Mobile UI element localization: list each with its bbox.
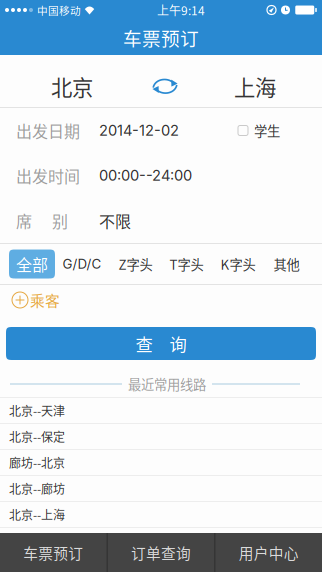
button[interactable]: 学生	[238, 114, 322, 146]
staticText: 席	[16, 209, 32, 232]
staticText: K字头	[220, 254, 255, 274]
staticText: 车票预订	[123, 24, 199, 51]
staticText: 北京--保定	[9, 428, 65, 445]
staticText: 其他	[273, 254, 299, 274]
staticText: G/D/C	[62, 256, 101, 272]
staticText: 出发时间	[16, 164, 80, 187]
button[interactable]: 北京--天津	[0, 398, 322, 424]
button[interactable]: 乘客	[0, 285, 70, 315]
staticText: 乘客	[30, 289, 60, 311]
button[interactable]: 北京	[0, 64, 144, 108]
staticText: 查 询	[135, 331, 186, 356]
staticText: 北京--廊坊	[9, 480, 65, 497]
button[interactable]: G/D/C	[55, 244, 109, 284]
staticText: 最近常用线路	[128, 374, 206, 394]
button[interactable]: 北京--上海	[0, 502, 322, 528]
staticText: Z字头	[118, 254, 152, 274]
button[interactable]: 席	[0, 198, 322, 243]
staticText: 中国移动	[37, 2, 81, 18]
staticText: 北京	[51, 71, 93, 102]
button[interactable]: 车票预订	[0, 533, 107, 572]
staticText: 订单查询	[131, 542, 191, 563]
staticText: 学生	[254, 121, 280, 140]
button[interactable]: 用户中心	[215, 533, 322, 572]
staticText: 北京--天津	[9, 402, 65, 419]
button[interactable]: K字头	[211, 244, 265, 284]
staticText: 北京--上海	[9, 506, 65, 523]
staticText: 出发日期	[16, 119, 80, 142]
button[interactable]: 出发时间	[0, 153, 322, 198]
button[interactable]: 上海	[188, 64, 322, 108]
button[interactable]: 其他	[265, 244, 308, 284]
staticText: 全部	[16, 252, 48, 276]
button[interactable]: 北京--保定	[0, 424, 322, 450]
button[interactable]: 查 询	[6, 327, 316, 360]
button[interactable]: 订单查询	[108, 533, 214, 572]
staticText: 上午9:14	[157, 1, 205, 19]
staticText: 用户中心	[239, 542, 299, 563]
staticText: 2014-12-02	[99, 122, 179, 139]
button[interactable]: 全部	[0, 244, 55, 284]
button[interactable]: 出发日期	[0, 108, 322, 153]
button[interactable]: 北京--廊坊	[0, 476, 322, 502]
button[interactable]: Swap departure and arrival cities	[144, 64, 188, 108]
button[interactable]: Z字头	[109, 244, 162, 284]
staticText: 车票预订	[23, 542, 83, 563]
staticText: 别	[52, 209, 68, 232]
staticText: T字头	[169, 254, 203, 274]
staticText: 00:00--24:00	[99, 167, 192, 184]
staticText: 上海	[234, 71, 276, 102]
button[interactable]: T字头	[162, 244, 211, 284]
staticText: 不限	[99, 209, 131, 232]
staticText: 廊坊--北京	[9, 454, 65, 471]
button[interactable]: 廊坊--北京	[0, 450, 322, 476]
